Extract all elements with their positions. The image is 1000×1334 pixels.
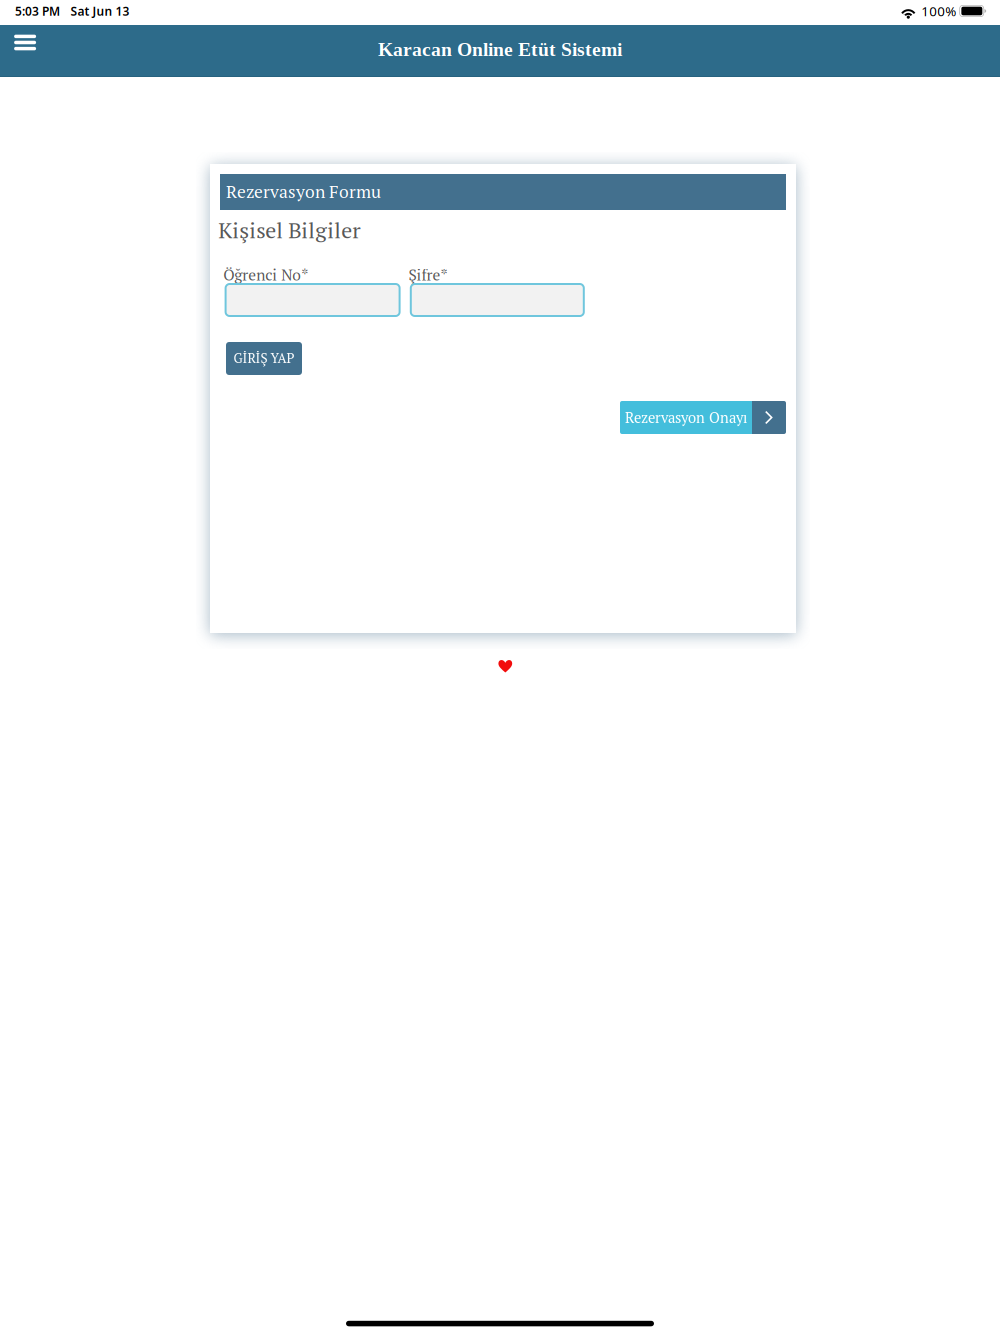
button[interactable]: GİRİŞ YAP [226,342,302,375]
staticText: Karacan Online Etüt Sistemi [378,39,622,60]
staticText: Rezervasyon Formu [226,180,381,203]
staticText: GİRİŞ YAP [233,349,294,367]
staticText: Rezervasyon Onayı [625,408,747,427]
staticText: Sat Jun 13 [70,3,129,19]
button[interactable]: Rezervasyon Onayı [620,401,786,434]
staticText: Şifre* [408,264,447,285]
staticText: 100% [921,2,956,20]
button[interactable]: Menu [3,25,47,60]
staticText: Kişisel Bilgiler [218,215,360,244]
staticText: 5:03 PM [15,3,60,19]
staticText: Öğrenci No* [223,264,308,285]
